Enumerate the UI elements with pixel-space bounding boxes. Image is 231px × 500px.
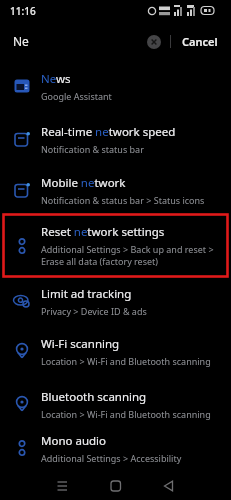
staticText: News xyxy=(41,71,71,87)
staticText: 11:16 xyxy=(10,4,36,18)
button[interactable]: Limit ad tracking xyxy=(0,277,231,325)
staticText: Location > Wi-Fi and Bluetooth scanning xyxy=(41,408,211,420)
button[interactable]: Cancel xyxy=(182,34,218,49)
staticText: Notification & status bar > Status icons xyxy=(41,194,205,206)
button[interactable]: Real-time network speed xyxy=(0,112,231,166)
staticText: Real-time network speed xyxy=(41,124,176,140)
staticText: Ne xyxy=(13,33,29,49)
staticText: Mono audio xyxy=(41,433,106,449)
staticText: Additional Settings > Accessibility xyxy=(41,452,182,464)
button[interactable]: News xyxy=(0,60,231,112)
button[interactable]: Bluetooth scanning xyxy=(0,377,231,431)
staticText: Additional Settings > Back up and reset … xyxy=(41,243,214,255)
staticText: Reset network settings xyxy=(41,224,165,240)
button[interactable] xyxy=(0,465,231,500)
staticText: Bluetooth scanning xyxy=(41,389,147,405)
staticText: Cancel xyxy=(182,34,218,49)
staticText: Google Assistant xyxy=(41,90,112,102)
staticText: Mobile network xyxy=(41,175,126,191)
button[interactable]: Mobile network xyxy=(0,166,231,214)
staticText: Notification & status bar xyxy=(41,143,144,155)
button[interactable]: Reset network settings xyxy=(0,214,231,277)
button[interactable]: Mono audio xyxy=(0,431,231,465)
button[interactable]: Wi-Fi scanning xyxy=(0,325,231,377)
staticText: Wi-Fi scanning xyxy=(41,336,120,352)
staticText: Location > Wi-Fi and Bluetooth scanning xyxy=(41,355,211,367)
staticText: Erase all data (factory reset) xyxy=(41,255,159,267)
button[interactable] xyxy=(147,35,161,49)
staticText: Limit ad tracking xyxy=(41,286,132,302)
staticText: Privacy > Device ID & ads xyxy=(41,305,147,317)
